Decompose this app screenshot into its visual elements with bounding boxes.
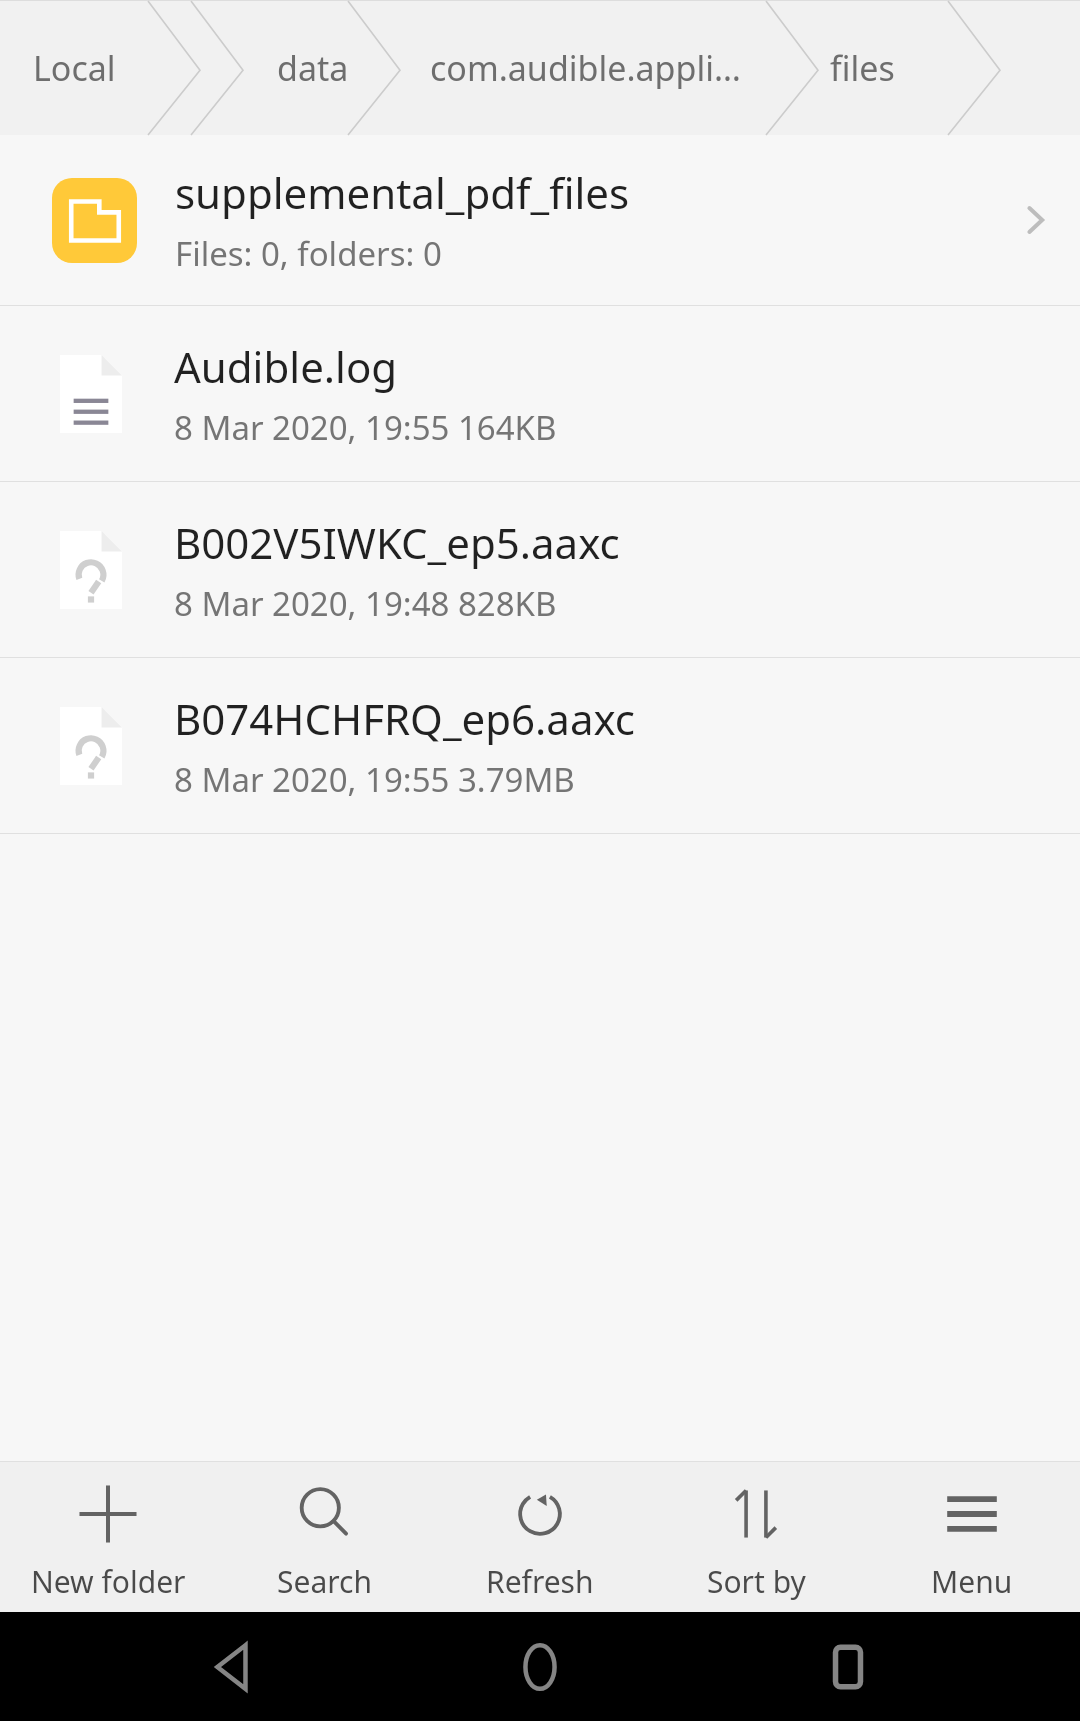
button[interactable]: Open folder (990, 135, 1080, 305)
staticText: Audible.log (174, 338, 398, 395)
button[interactable]: Menu (864, 1462, 1080, 1612)
staticText: Files: 0, folders: 0 (175, 231, 442, 276)
button[interactable]: files (787, 0, 937, 135)
staticText: Menu (931, 1561, 1013, 1602)
button[interactable]: Back (158, 1612, 308, 1721)
staticText: Local (33, 45, 116, 91)
staticText: New folder (31, 1561, 186, 1602)
button[interactable]: Home (465, 1612, 615, 1721)
button[interactable]: Audible.log (0, 306, 1080, 481)
staticText: data (277, 45, 349, 91)
staticText: Search (277, 1561, 372, 1602)
button[interactable]: Recents (773, 1612, 923, 1721)
button[interactable]: data (243, 0, 383, 135)
staticText: Sort by (707, 1561, 806, 1602)
staticText: B002V5IWKC_ep5.aaxc (174, 514, 620, 571)
staticText: Refresh (486, 1561, 594, 1602)
staticText: B074HCHFRQ_ep6.aaxc (174, 690, 635, 747)
button[interactable]: Search (216, 1462, 432, 1612)
button[interactable]: supplemental_pdf_files (0, 135, 1080, 305)
button[interactable]: Sort by (648, 1462, 864, 1612)
staticText: 8 Mar 2020, 19:55 164KB (174, 405, 557, 450)
staticText: files (830, 45, 895, 91)
button[interactable]: Refresh (432, 1462, 648, 1612)
staticText: 8 Mar 2020, 19:55 3.79MB (174, 757, 575, 802)
staticText: supplemental_pdf_files (175, 164, 630, 221)
button[interactable]: B074HCHFRQ_ep6.aaxc (0, 658, 1080, 833)
button[interactable]: Local (0, 0, 148, 135)
staticText: 8 Mar 2020, 19:48 828KB (174, 581, 557, 626)
button[interactable]: B002V5IWKC_ep5.aaxc (0, 482, 1080, 657)
button[interactable]: New folder (0, 1462, 216, 1612)
button[interactable]: com.audible.appli… (401, 0, 769, 135)
staticText: com.audible.appli… (430, 45, 741, 91)
